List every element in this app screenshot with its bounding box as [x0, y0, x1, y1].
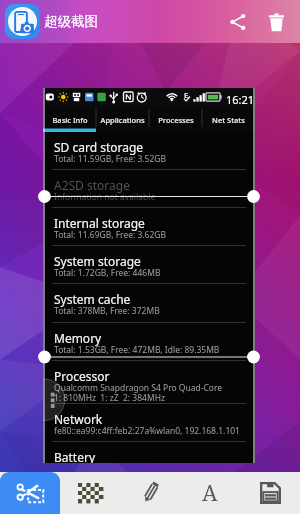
staticText: Total: 11.69GB, Free: 3.62GB	[54, 229, 167, 241]
staticText: Qualcomm Snapdragon S4 Pro Quad-Core	[54, 382, 223, 394]
button[interactable]: Internal storage	[43, 208, 255, 246]
staticText: fe80::ea99:c4ff:feb2:27a%wlan0, 192.168.…	[54, 425, 240, 437]
staticText: Total: 1.72GB, Free: 446MB	[54, 267, 161, 279]
staticText: Applications	[100, 115, 145, 125]
staticText: Memory	[54, 330, 102, 346]
button[interactable]: Applications	[96, 107, 149, 132]
staticText: Net Stats	[212, 115, 245, 125]
button[interactable]: System cache	[43, 284, 255, 323]
button[interactable]: Draw	[120, 472, 180, 514]
button[interactable]: System storage	[43, 246, 255, 284]
staticText: Processes	[158, 115, 194, 125]
staticText: Total: 1.53GB, Free: 472MB, Idle: 89.35M…	[54, 344, 220, 356]
staticText: System storage	[54, 253, 141, 269]
button[interactable]: Crop	[0, 472, 60, 514]
staticText: Basic Info	[52, 115, 88, 125]
button[interactable]: Processor	[43, 361, 255, 404]
staticText: System cache	[54, 291, 131, 307]
button[interactable]: Share	[219, 3, 257, 41]
button[interactable]: App icon	[5, 4, 40, 39]
button[interactable]: Basic Info	[43, 107, 96, 132]
staticText: Total: 11.59GB, Free: 3.52GB	[54, 153, 167, 165]
staticText: Total: 378MB, Free: 372MB	[54, 305, 160, 317]
staticText: Network	[54, 411, 103, 427]
staticText: Battery	[54, 449, 96, 463]
staticText: 16:21	[226, 92, 255, 107]
button[interactable]: Save	[240, 472, 300, 514]
staticText: A2SD storage	[54, 177, 130, 193]
button[interactable]: Network	[43, 404, 255, 442]
button[interactable]: Mosaic	[60, 472, 120, 514]
staticText: 超级截图	[44, 13, 98, 30]
staticText: E	[184, 90, 189, 100]
button[interactable]: A2SD storage	[43, 170, 255, 208]
button[interactable]: Delete	[257, 3, 295, 41]
button[interactable]: Battery	[43, 442, 255, 463]
staticText: SD card storage	[54, 139, 144, 155]
staticText: 1: 810MHz 1: zZ 2: 384MHz	[54, 392, 165, 404]
button[interactable]: SD card storage	[43, 132, 255, 170]
staticText: Processor	[54, 368, 110, 384]
button[interactable]: Net Stats	[202, 107, 255, 132]
staticText: Internal storage	[54, 215, 145, 231]
staticText: A	[202, 477, 218, 507]
button[interactable]: Text	[180, 472, 240, 514]
staticText: Information not available	[54, 191, 156, 203]
button[interactable]: Memory	[43, 323, 255, 361]
button[interactable]: Processes	[149, 107, 202, 132]
